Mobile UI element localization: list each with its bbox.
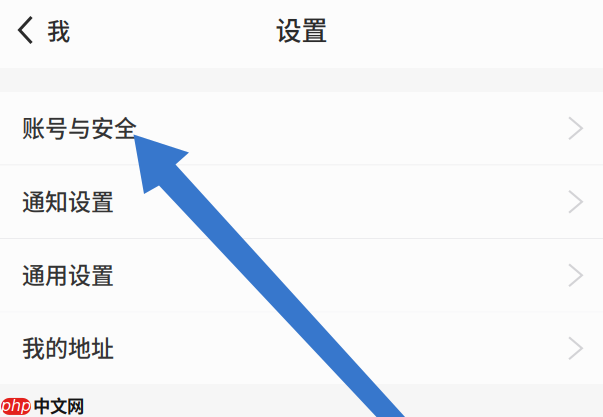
staticText: 我	[47, 13, 70, 46]
staticText: 通知设置	[22, 184, 114, 217]
staticText: 设置	[275, 10, 327, 48]
staticText: 我的地址	[22, 330, 114, 363]
staticText: 账号与安全	[22, 110, 137, 143]
button[interactable]: 通用设置	[0, 239, 603, 311]
button[interactable]: 账号与安全	[0, 92, 603, 164]
button[interactable]: 我	[0, 9, 70, 59]
staticText: 通用设置	[22, 257, 114, 290]
button[interactable]: 我的地址	[0, 312, 603, 384]
button[interactable]: 通知设置	[0, 165, 603, 238]
